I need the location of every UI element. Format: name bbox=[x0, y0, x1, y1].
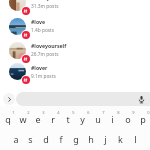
button[interactable]: Voice input bbox=[136, 94, 147, 105]
staticText: 6 bbox=[87, 110, 90, 115]
staticText: k bbox=[118, 133, 123, 145]
staticText: 1.4b posts bbox=[31, 27, 55, 34]
staticText: d bbox=[43, 133, 49, 145]
staticText: y bbox=[80, 113, 85, 125]
button[interactable]: s bbox=[23, 131, 38, 146]
button[interactable]: h bbox=[83, 131, 98, 146]
staticText: i bbox=[111, 113, 114, 125]
staticText: l bbox=[134, 133, 137, 145]
staticText: p bbox=[140, 113, 146, 125]
button[interactable]: t bbox=[60, 111, 75, 126]
button[interactable]: p bbox=[135, 111, 150, 126]
staticText: g bbox=[73, 133, 79, 145]
button[interactable]: f bbox=[53, 131, 68, 146]
staticText: 5 bbox=[72, 110, 75, 115]
staticText: #loveyourself bbox=[31, 42, 67, 49]
button[interactable] bbox=[16, 92, 150, 106]
staticText: 2 bbox=[27, 110, 30, 115]
button[interactable]: q bbox=[0, 111, 15, 126]
staticText: w bbox=[19, 113, 27, 125]
button[interactable]: #love bbox=[0, 14, 150, 38]
staticText: f bbox=[59, 133, 63, 145]
staticText: e bbox=[35, 113, 41, 125]
staticText: h bbox=[88, 133, 94, 145]
staticText: 1 bbox=[12, 110, 15, 115]
staticText: 0 bbox=[147, 110, 150, 115]
button[interactable]: e bbox=[30, 111, 45, 126]
staticText: 4 bbox=[57, 110, 60, 115]
staticText: 9 bbox=[132, 110, 135, 115]
button[interactable]: g bbox=[68, 131, 83, 146]
button[interactable]: #lovely bbox=[0, 0, 150, 14]
button[interactable]: o bbox=[120, 111, 135, 126]
staticText: 3 bbox=[42, 110, 45, 115]
staticText: s bbox=[28, 133, 33, 145]
staticText: j bbox=[104, 133, 107, 145]
button[interactable]: #lover bbox=[0, 62, 150, 81]
staticText: 7 bbox=[102, 110, 105, 115]
staticText: #love bbox=[31, 18, 46, 25]
button[interactable]: y bbox=[75, 111, 90, 126]
button[interactable]: u bbox=[90, 111, 105, 126]
button[interactable]: r bbox=[45, 111, 60, 126]
button[interactable]: #loveyourself bbox=[0, 38, 150, 62]
button[interactable]: w bbox=[15, 111, 30, 126]
staticText: t bbox=[66, 113, 70, 125]
staticText: a bbox=[13, 133, 19, 145]
staticText: 31.3m posts bbox=[31, 3, 59, 10]
button[interactable]: k bbox=[113, 131, 128, 146]
button[interactable]: l bbox=[128, 131, 143, 146]
staticText: 9.1m posts bbox=[31, 73, 56, 80]
staticText: o bbox=[125, 113, 131, 125]
staticText: #lovely bbox=[31, 0, 50, 1]
button[interactable]: i bbox=[105, 111, 120, 126]
staticText: 8 bbox=[117, 110, 120, 115]
staticText: q bbox=[5, 113, 11, 125]
button[interactable]: Expand keyboard actions bbox=[3, 93, 15, 105]
staticText: u bbox=[95, 113, 101, 125]
button[interactable]: d bbox=[38, 131, 53, 146]
staticText: #lover bbox=[31, 64, 48, 71]
staticText: r bbox=[51, 113, 55, 125]
button[interactable]: j bbox=[98, 131, 113, 146]
staticText: 26.7m posts bbox=[31, 51, 59, 58]
button[interactable]: a bbox=[8, 131, 23, 146]
